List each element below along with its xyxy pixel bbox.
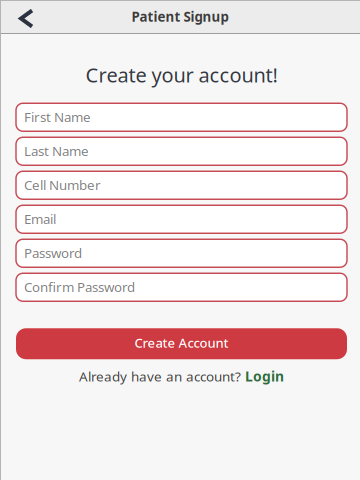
staticText: Create Account [134, 334, 228, 352]
staticText: Cell Number [24, 176, 101, 194]
button[interactable]: Create Account [16, 328, 347, 359]
staticText: Already have an account? [79, 367, 241, 385]
button[interactable]: Back [0, 0, 47, 33]
staticText: Patient Signup [131, 7, 228, 26]
staticText: First Name [24, 108, 91, 126]
staticText: Email [24, 210, 56, 228]
staticText: Confirm Password [24, 278, 135, 296]
staticText: Last Name [24, 142, 89, 160]
staticText: Create your account! [85, 61, 277, 88]
staticText: Password [24, 244, 82, 262]
staticText: Login [245, 367, 284, 386]
button[interactable]: Already have an account? [16, 366, 347, 386]
